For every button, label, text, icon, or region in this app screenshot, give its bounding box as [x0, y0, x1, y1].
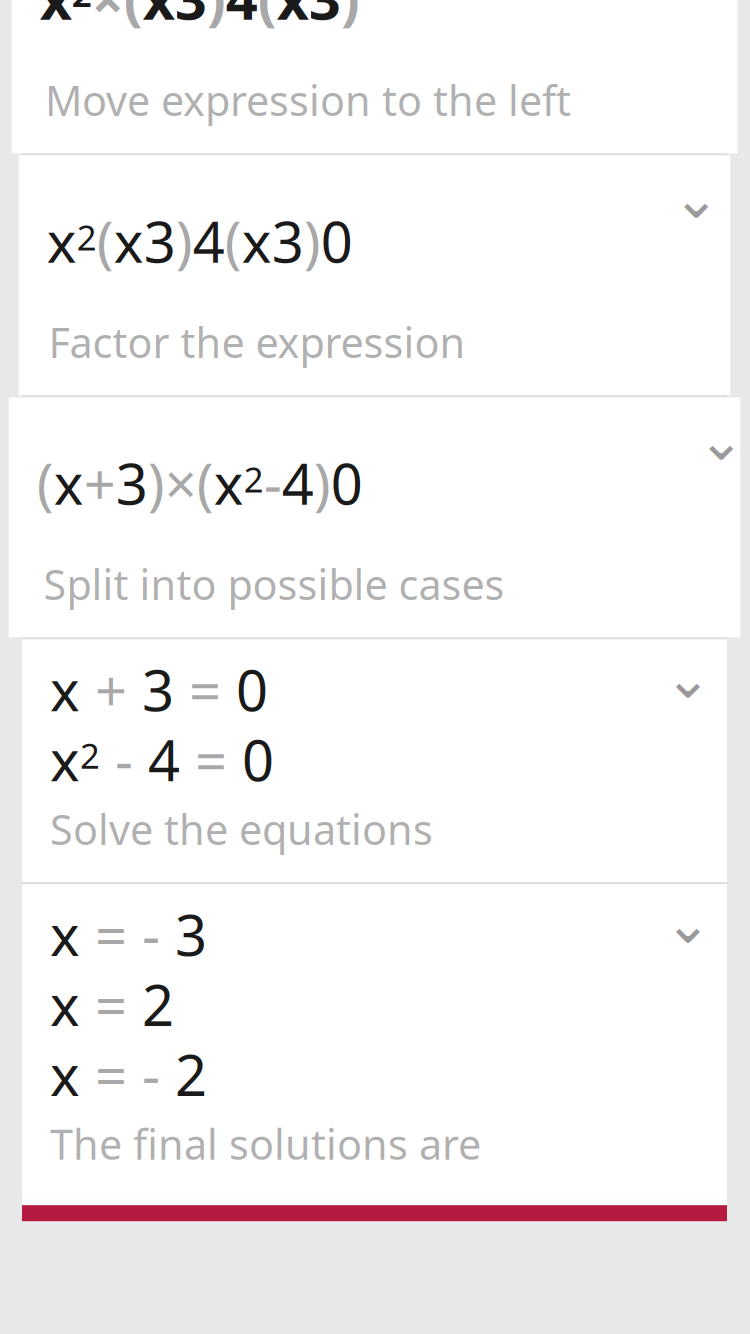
staticText: x: [54, 446, 84, 520]
staticText: ⌄: [673, 167, 720, 230]
staticText: -: [142, 897, 175, 971]
staticText: x: [143, 0, 175, 35]
staticText: 4: [148, 722, 180, 797]
staticText: 3: [144, 204, 176, 278]
staticText: Factor the expression: [48, 314, 465, 369]
staticText: (: [225, 204, 242, 278]
staticText: ): [314, 446, 331, 520]
button[interactable]: x: [22, 639, 727, 882]
staticText: x: [50, 722, 80, 797]
staticText: 4: [226, 0, 258, 35]
staticText: x: [50, 1037, 80, 1111]
staticText: 2: [175, 1037, 207, 1111]
staticText: =: [180, 722, 242, 797]
staticText: ): [341, 0, 360, 35]
staticText: =: [174, 652, 236, 727]
staticText: -: [264, 371, 282, 594]
button[interactable]: x: [19, 155, 730, 395]
staticText: 3: [309, 0, 341, 35]
staticText: (: [258, 0, 277, 35]
staticText: 2: [77, 214, 97, 260]
staticText: Move expression to the left: [45, 72, 571, 127]
staticText: 3: [272, 204, 304, 278]
staticText: +: [84, 371, 116, 594]
staticText: x: [50, 897, 80, 971]
staticText: -: [142, 1037, 175, 1111]
staticText: Split into possible cases: [43, 556, 504, 611]
staticText: 2: [244, 456, 264, 502]
staticText: -: [100, 722, 148, 797]
staticText: x: [214, 446, 244, 520]
staticText: ⌄: [664, 891, 711, 955]
staticText: 3: [142, 652, 174, 727]
staticText: 0: [331, 446, 363, 520]
staticText: x: [40, 0, 72, 35]
staticText: ×: [92, 0, 124, 109]
staticText: ⌄: [698, 409, 745, 472]
staticText: x: [50, 652, 80, 727]
button[interactable]: (: [9, 397, 740, 637]
staticText: (: [197, 446, 214, 520]
staticText: x: [242, 204, 272, 278]
staticText: ): [176, 204, 193, 278]
staticText: +: [80, 652, 142, 727]
staticText: ): [148, 446, 165, 520]
staticText: 3: [175, 897, 207, 971]
staticText: 0: [236, 652, 268, 727]
staticText: x: [277, 0, 309, 35]
staticText: =: [80, 897, 142, 971]
staticText: ): [207, 0, 226, 35]
staticText: =: [80, 967, 142, 1041]
staticText: The final solutions are: [50, 1116, 481, 1171]
staticText: 4: [193, 204, 225, 278]
staticText: 2: [72, 0, 92, 17]
staticText: =: [80, 1037, 142, 1111]
staticText: x: [114, 204, 144, 278]
staticText: x: [47, 204, 77, 278]
button[interactable]: x: [22, 884, 727, 1193]
staticText: 0: [321, 204, 353, 278]
staticText: (: [97, 204, 114, 278]
staticText: 3: [116, 446, 148, 520]
staticText: 0: [242, 722, 274, 797]
staticText: ): [304, 204, 321, 278]
staticText: x: [50, 967, 80, 1041]
staticText: 2: [80, 732, 100, 778]
staticText: ⌄: [664, 647, 711, 710]
staticText: (: [37, 446, 54, 520]
staticText: 4: [282, 446, 314, 520]
staticText: 3: [175, 0, 207, 35]
button[interactable]: x: [12, 0, 737, 153]
staticText: ×: [165, 371, 197, 594]
staticText: Solve the equations: [50, 801, 433, 856]
staticText: 2: [142, 967, 174, 1041]
staticText: (: [124, 0, 143, 35]
